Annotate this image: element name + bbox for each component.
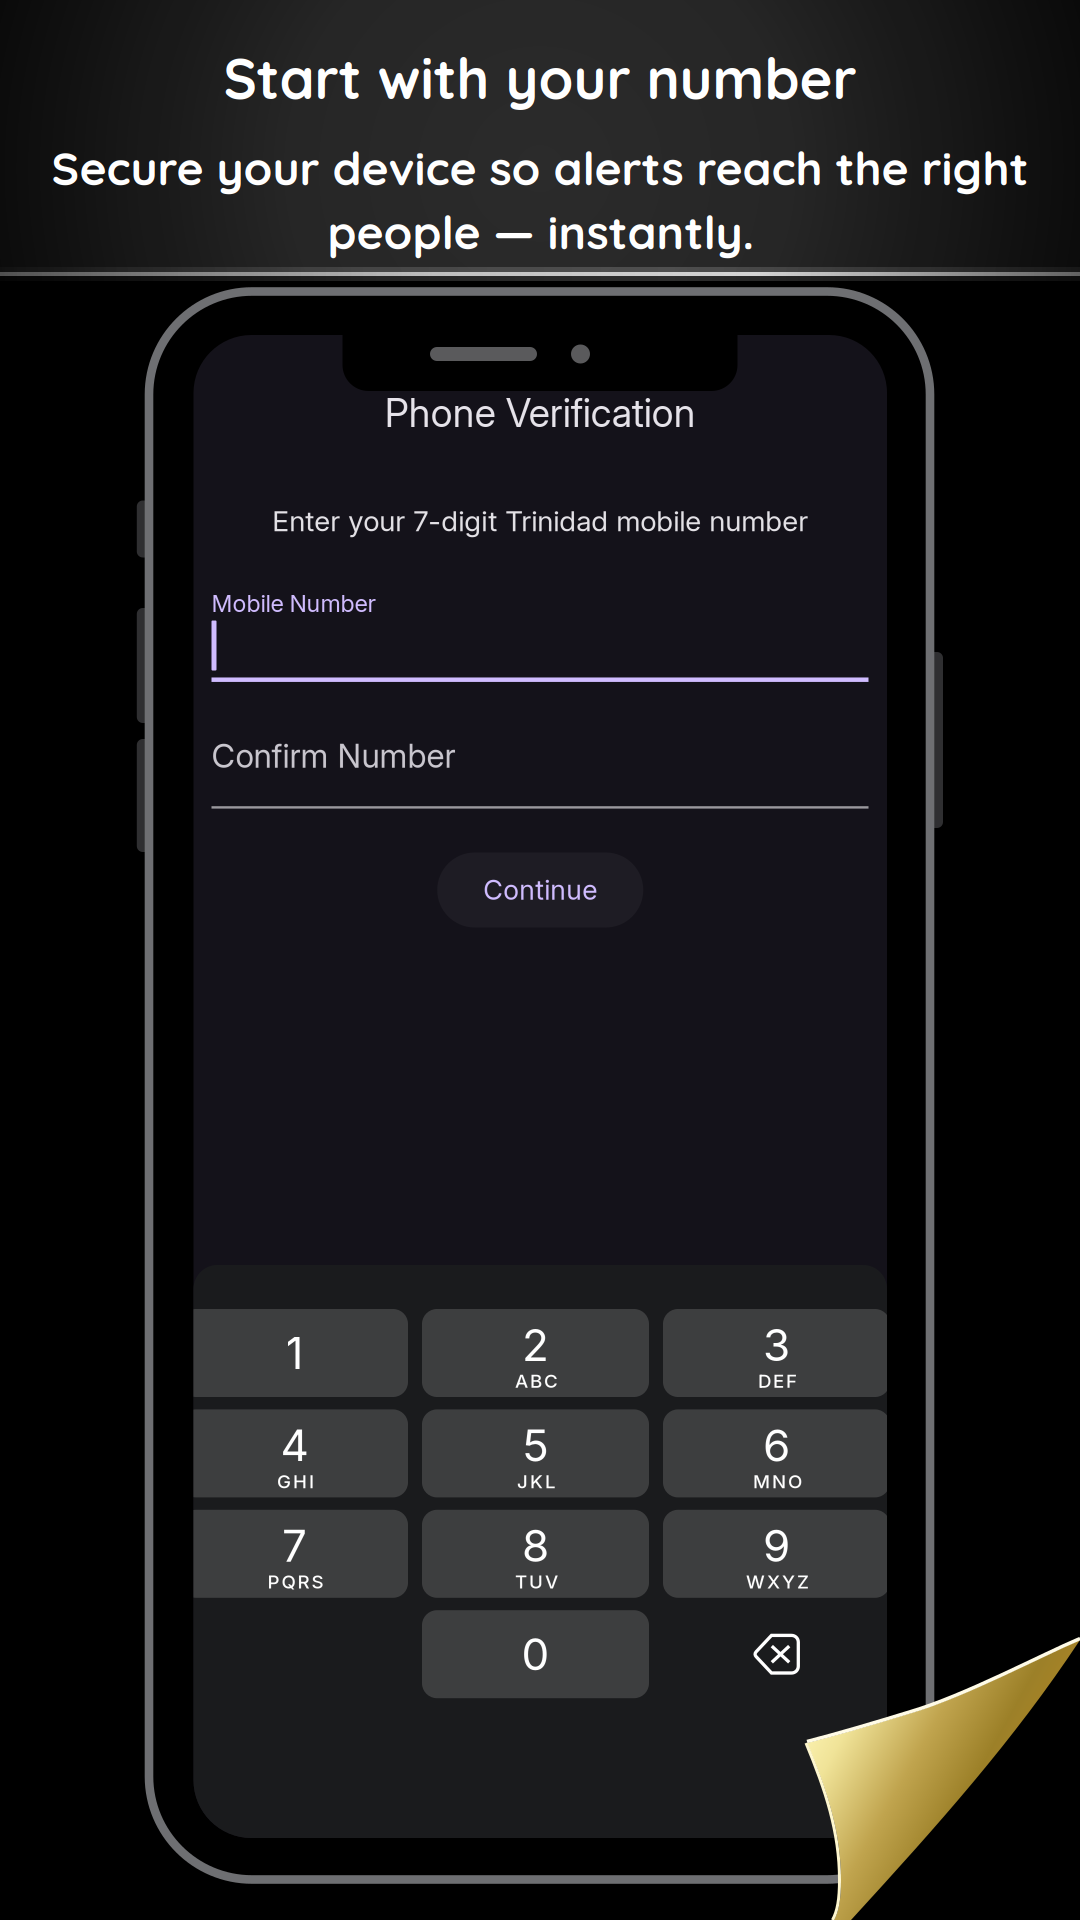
staticText: JKL [517,1470,556,1493]
staticText: 6 [763,1419,790,1472]
button[interactable]: Delete [663,1610,890,1698]
staticText: ABC [515,1370,558,1392]
staticText: people — instantly. [327,203,754,261]
button[interactable]: 3 [663,1309,890,1397]
staticText: 1 [285,1326,303,1380]
staticText: 9 [763,1519,790,1572]
staticText: 7 [282,1519,307,1572]
button[interactable]: 4 [181,1409,408,1497]
staticText: 0 [521,1628,549,1681]
button[interactable]: 9 [663,1510,890,1598]
staticText: Secure your device so alerts reach the r… [51,139,1028,197]
button[interactable]: 0 [422,1610,649,1698]
staticText: MNO [753,1470,802,1493]
button[interactable]: 8 [422,1510,649,1598]
staticText: 3 [763,1318,790,1372]
button[interactable]: 1 [181,1309,408,1397]
staticText: Confirm Number [211,736,455,776]
staticText: Phone Verification [385,389,696,436]
staticText: 5 [522,1419,549,1472]
button[interactable]: 6 [663,1409,890,1497]
staticText: Enter your 7-digit Trinidad mobile numbe… [272,504,808,538]
staticText: TUV [515,1570,558,1593]
staticText: Start with your number [223,43,856,113]
staticText: DEF [758,1370,797,1392]
button[interactable]: Continue [437,852,643,927]
staticText: 2 [522,1318,549,1372]
staticText: PQRS [267,1570,323,1593]
staticText: 4 [280,1419,308,1472]
staticText: GHI [277,1470,314,1493]
staticText: 8 [522,1519,549,1572]
button[interactable]: 5 [422,1409,649,1497]
staticText: Mobile Number [211,589,376,618]
button[interactable]: 7 [181,1510,408,1598]
staticText: WXYZ [746,1570,809,1593]
button[interactable]: 2 [422,1309,649,1397]
staticText: Continue [483,874,597,906]
